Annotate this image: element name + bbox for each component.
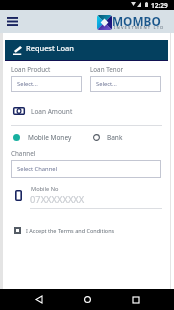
- staticText: I Accept the Terms and Conditions: [26, 227, 115, 234]
- button[interactable]: Recent apps: [126, 289, 146, 310]
- button[interactable]: Back: [29, 289, 49, 310]
- staticText: Loan Amount: [31, 107, 73, 116]
- staticText: MOMBO: [112, 13, 161, 29]
- staticText: Select...: [96, 80, 117, 88]
- button[interactable]: Bank: [93, 131, 123, 144]
- button[interactable]: Select...: [11, 76, 82, 92]
- button[interactable]: I Accept the Terms and Conditions: [14, 224, 115, 236]
- button[interactable]: Menu: [2, 10, 23, 33]
- staticText: Select...: [17, 80, 38, 88]
- staticText: Mobile No: [31, 185, 59, 193]
- staticText: Loan Product: [11, 65, 51, 74]
- staticText: Request Loan: [26, 43, 74, 53]
- staticText: 12:29: [151, 1, 168, 10]
- staticText: Bank: [107, 133, 123, 142]
- button[interactable]: Mobile Money: [13, 131, 72, 144]
- staticText: INVESTMENT LTD: [114, 25, 165, 31]
- button[interactable]: Select...: [90, 76, 161, 92]
- staticText: Loan Tenor: [90, 65, 124, 74]
- staticText: Select Channel: [17, 165, 58, 173]
- staticText: 07XXXXXXXX: [30, 193, 85, 206]
- staticText: Mobile Money: [28, 133, 72, 142]
- button[interactable]: Select Channel: [11, 160, 161, 178]
- button[interactable]: Request Loan: [5, 40, 168, 61]
- staticText: Channel: [11, 149, 36, 158]
- button[interactable]: Home: [77, 289, 97, 310]
